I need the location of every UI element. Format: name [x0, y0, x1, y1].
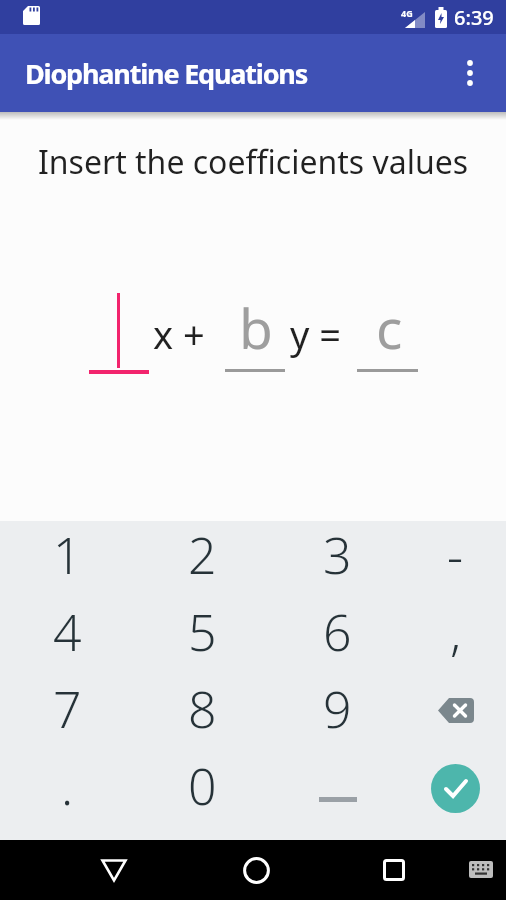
staticText: 3: [323, 521, 352, 589]
staticText: 1: [53, 521, 82, 589]
staticText: 9: [323, 675, 352, 743]
button[interactable]: 1: [0, 521, 135, 598]
staticText: 7: [53, 675, 82, 743]
staticText: 5: [188, 598, 217, 666]
button[interactable]: 5: [135, 598, 270, 675]
button[interactable]: 0: [135, 752, 270, 829]
staticText: 6:39: [454, 4, 494, 31]
button[interactable]: 9: [270, 675, 405, 752]
button[interactable]: [431, 764, 480, 813]
staticText: -: [447, 521, 464, 589]
button[interactable]: [450, 53, 490, 93]
button[interactable]: [374, 850, 414, 890]
staticText: .: [61, 752, 74, 820]
button[interactable]: [466, 854, 496, 884]
staticText: c: [376, 290, 403, 365]
button[interactable]: 6: [270, 598, 405, 675]
staticText: 4G: [401, 7, 413, 19]
button[interactable]: .: [0, 752, 135, 829]
button[interactable]: 4: [0, 598, 135, 675]
staticText: y =: [290, 308, 341, 360]
button[interactable]: 7: [0, 675, 135, 752]
staticText: Insert the coefficients values: [0, 140, 506, 184]
button[interactable]: [94, 850, 134, 890]
staticText: Diophantine Equations: [25, 55, 308, 92]
staticText: 2: [188, 521, 217, 589]
button[interactable]: [236, 850, 276, 890]
staticText: 6: [323, 598, 352, 666]
button[interactable]: [405, 752, 506, 829]
staticText: ,: [450, 598, 462, 666]
button[interactable]: 2: [135, 521, 270, 598]
button[interactable]: 3: [270, 521, 405, 598]
button[interactable]: -: [405, 521, 506, 598]
staticText: x +: [153, 308, 205, 360]
staticText: b: [239, 290, 273, 365]
button[interactable]: 8: [135, 675, 270, 752]
button[interactable]: [270, 752, 405, 829]
staticText: 4: [53, 598, 82, 666]
staticText: 8: [188, 675, 217, 743]
button[interactable]: ,: [405, 598, 506, 675]
staticText: 0: [188, 752, 217, 820]
button[interactable]: [405, 675, 506, 752]
